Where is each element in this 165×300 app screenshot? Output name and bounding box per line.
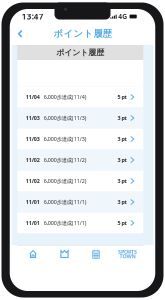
button[interactable]: Calendar	[80, 245, 112, 262]
staticText: ポイント履歴	[56, 48, 104, 57]
button[interactable]: 11/04	[17, 86, 143, 107]
staticText: 4G	[118, 12, 127, 21]
button[interactable]: 11/01	[17, 191, 143, 212]
staticText: 11/03	[26, 135, 40, 143]
button[interactable]: Rewards	[49, 245, 80, 262]
staticText: 3 pt	[117, 156, 126, 164]
staticText: 6,000歩達成(11/2)	[44, 156, 87, 164]
staticText: 3 pt	[117, 198, 126, 206]
staticText: 5 pt	[117, 93, 126, 101]
button[interactable]: 11/03	[17, 107, 143, 128]
staticText: 11/02	[26, 156, 40, 164]
staticText: 6,000歩達成(11/3)	[44, 135, 87, 143]
button[interactable]: 11/01	[17, 212, 143, 233]
staticText: 11/02	[26, 177, 40, 185]
staticText: 5 pt	[117, 219, 126, 227]
staticText: 11/01	[26, 198, 40, 206]
button[interactable]: Home	[17, 245, 49, 262]
staticText: 3 pt	[117, 135, 126, 143]
staticText: TOWN	[119, 253, 135, 260]
staticText: SPORTS	[118, 248, 137, 255]
button[interactable]: 11/02	[17, 170, 143, 191]
staticText: 6,000歩達成(11/1)	[44, 219, 87, 227]
staticText: 11/04	[26, 93, 40, 101]
staticText: 6,000歩達成(11/1)	[44, 198, 87, 206]
staticText: 6,000歩達成(11/4)	[44, 93, 87, 101]
button[interactable]: 11/03	[17, 128, 143, 149]
staticText: 3 pt	[117, 177, 126, 185]
button[interactable]: 11/02	[17, 149, 143, 170]
staticText: 6,000歩達成(11/2)	[44, 177, 87, 185]
staticText: 3 pt	[117, 114, 126, 122]
button[interactable]: SPORTS	[112, 245, 143, 262]
button[interactable]: Back	[12, 27, 29, 41]
staticText: 6,000歩達成(11/3)	[44, 114, 87, 122]
staticText: 13:47	[22, 11, 44, 22]
staticText: 11/03	[26, 114, 40, 122]
staticText: 11/01	[26, 219, 40, 227]
staticText: ポイント履歴	[53, 28, 111, 39]
